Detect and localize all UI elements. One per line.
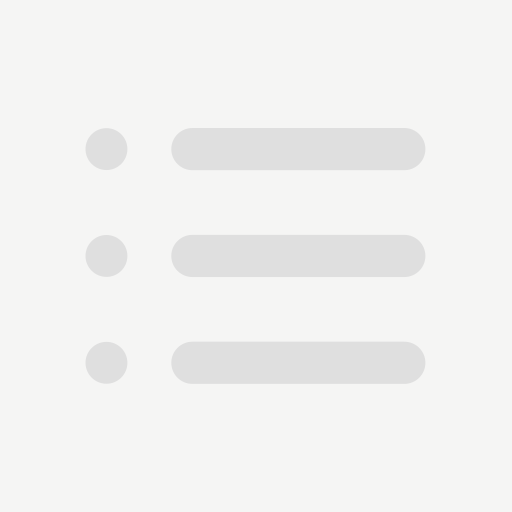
button[interactable]: Second item [85, 235, 425, 277]
button[interactable]: First item [85, 128, 425, 170]
button[interactable]: Third item [85, 342, 425, 384]
